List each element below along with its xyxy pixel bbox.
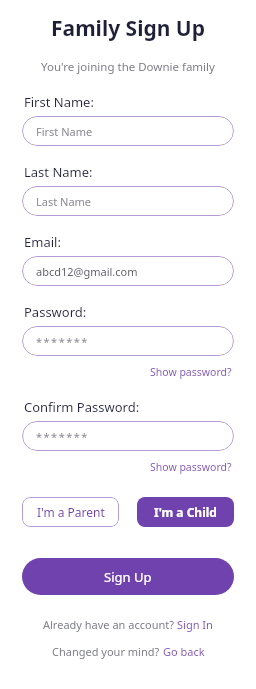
button[interactable]: First Name: [22, 116, 234, 146]
button[interactable]: *******: [22, 326, 234, 356]
staticText: Email:: [24, 233, 61, 251]
staticText: Password:: [24, 303, 87, 321]
button[interactable]: Show password?: [148, 364, 234, 380]
button[interactable]: Sign In: [177, 617, 213, 632]
button[interactable]: I'm a Parent: [22, 497, 119, 527]
staticText: abcd12@gmail.com: [36, 264, 138, 279]
staticText: Sign Up: [104, 568, 152, 586]
staticText: Family Sign Up: [22, 14, 234, 43]
button[interactable]: abcd12@gmail.com: [22, 256, 234, 286]
staticText: Last Name:: [24, 163, 93, 181]
staticText: First Name:: [24, 93, 94, 111]
staticText: Already have an account?: [43, 617, 177, 632]
button[interactable]: I'm a Child: [137, 497, 234, 527]
button[interactable]: Last Name: [22, 186, 234, 216]
staticText: First Name: [36, 124, 93, 139]
staticText: You're joining the Downie family: [22, 59, 234, 75]
staticText: Sign In: [177, 617, 213, 632]
staticText: *******: [36, 334, 89, 349]
button[interactable]: Show password?: [148, 459, 234, 475]
staticText: Confirm Password:: [24, 398, 140, 416]
staticText: I'm a Child: [154, 504, 217, 520]
button[interactable]: Go back: [163, 644, 205, 659]
staticText: Show password?: [150, 365, 232, 379]
button[interactable]: Sign Up: [22, 558, 234, 595]
staticText: Go back: [163, 644, 205, 659]
staticText: I'm a Parent: [37, 504, 105, 520]
button[interactable]: *******: [22, 421, 234, 451]
staticText: *******: [36, 429, 89, 444]
staticText: Show password?: [150, 460, 232, 474]
staticText: Changed your mind?: [52, 644, 163, 659]
staticText: Last Name: [36, 194, 92, 209]
